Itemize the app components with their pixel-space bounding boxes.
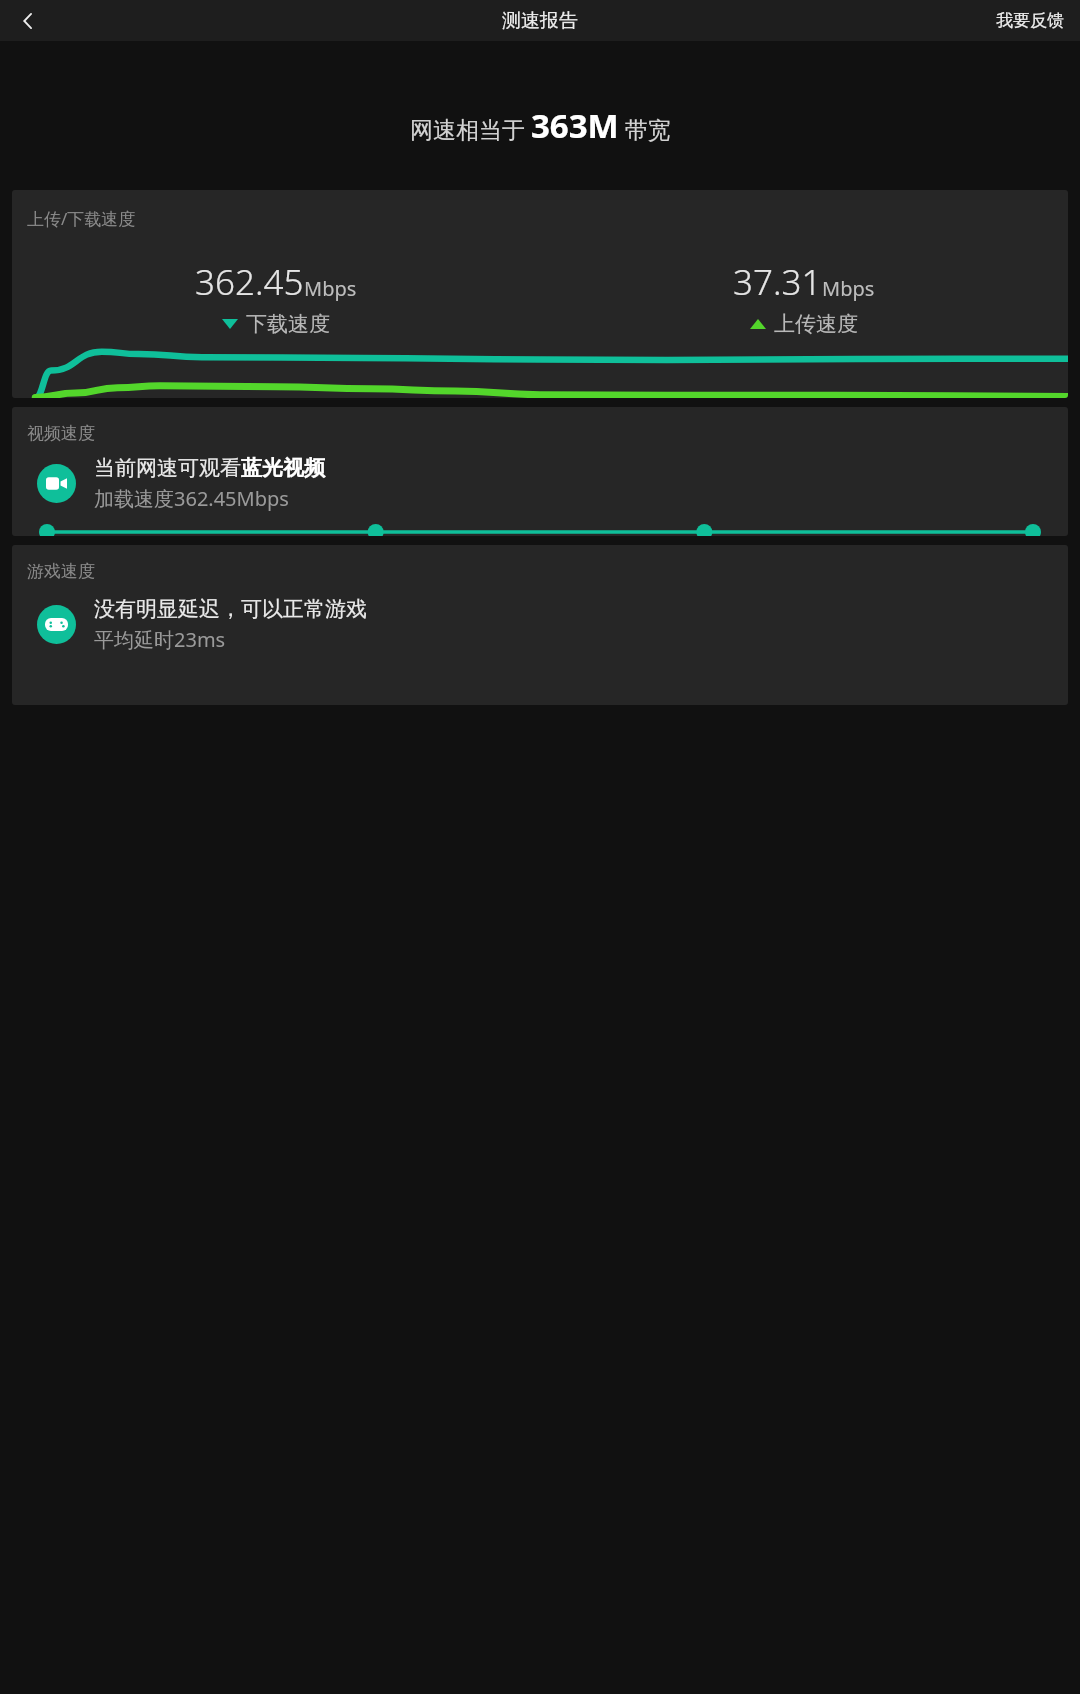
- staticText: 没有明显延迟，可以正常游戏: [94, 596, 367, 622]
- staticText: 游戏速度: [27, 561, 95, 582]
- staticText: 上传/下载速度: [27, 207, 136, 230]
- staticText: 当前网速可观看蓝光视频: [94, 455, 325, 481]
- button[interactable]: 上传/下载速度: [12, 190, 1068, 398]
- staticText: 37.31: [733, 258, 822, 306]
- staticText: 测速报告: [502, 9, 578, 33]
- staticText: 下载速度: [246, 311, 330, 337]
- button[interactable]: 游戏速度: [12, 545, 1068, 705]
- button[interactable]: 视频速度: [12, 407, 1068, 536]
- staticText: 我要反馈: [996, 10, 1064, 31]
- staticText: 362.45: [195, 258, 304, 306]
- staticText: Mbps: [822, 275, 875, 302]
- staticText: 上传速度: [774, 311, 858, 337]
- staticText: 平均延时23ms: [94, 626, 226, 653]
- staticText: 网速相当于 363M 带宽: [410, 103, 671, 148]
- button[interactable]: 测速报告: [502, 9, 578, 33]
- button[interactable]: 我要反馈: [990, 2, 1070, 39]
- staticText: Mbps: [304, 275, 357, 302]
- staticText: 视频速度: [27, 423, 95, 444]
- staticText: 加载速度362.45Mbps: [94, 485, 289, 512]
- button[interactable]: Back: [6, 0, 50, 41]
